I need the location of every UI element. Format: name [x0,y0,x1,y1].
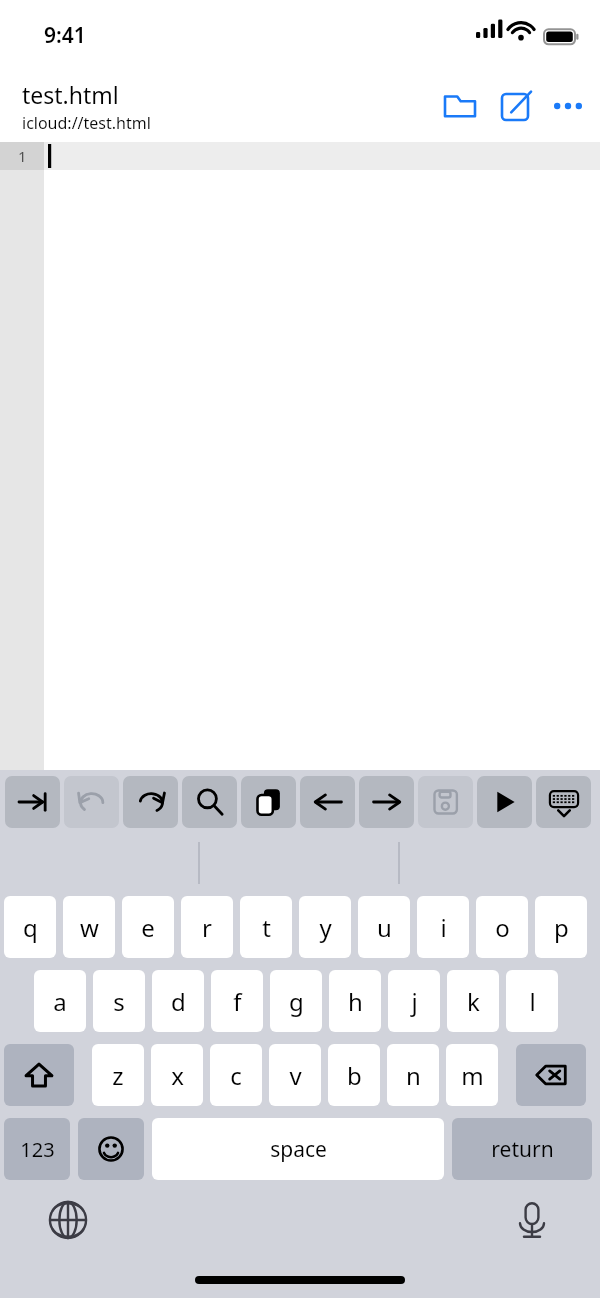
button[interactable]: Dictation [506,1194,558,1246]
button[interactable]: z [92,1044,144,1106]
staticText: f [233,985,242,1018]
staticText: e [141,911,155,944]
button[interactable]: a [34,970,86,1032]
button[interactable]: t [240,896,292,958]
button[interactable]: Emoji [78,1118,144,1180]
button[interactable]: Search [182,776,237,828]
staticText: s [113,985,125,1018]
staticText: z [112,1059,124,1092]
button[interactable]: More options [544,78,592,134]
button[interactable]: w [63,896,115,958]
staticText: h [348,985,363,1018]
staticText: b [347,1059,362,1092]
button[interactable]: space [152,1118,444,1180]
button[interactable]: e [122,896,174,958]
button[interactable]: r [181,896,233,958]
staticText: y [319,911,332,944]
button[interactable]: m [446,1044,498,1106]
button[interactable]: Change keyboard [42,1194,94,1246]
staticText: k [467,985,480,1018]
staticText: j [411,985,418,1018]
button[interactable]: x [151,1044,203,1106]
button[interactable]: k [447,970,499,1032]
staticText: 9:41 [44,21,86,50]
button[interactable]: b [328,1044,380,1106]
staticText: m [461,1059,484,1092]
button[interactable]: Tab [5,776,60,828]
staticText: c [230,1059,242,1092]
staticText: x [171,1059,184,1092]
button[interactable]: v [269,1044,321,1106]
button[interactable]: Run [477,776,532,828]
button[interactable]: Redo [123,776,178,828]
button[interactable]: s [93,970,145,1032]
button[interactable]: Save [418,776,473,828]
staticText: icloud://test.html [22,112,151,134]
button[interactable]: g [270,970,322,1032]
staticText: d [171,985,186,1018]
button[interactable]: j [388,970,440,1032]
button[interactable]: u [358,896,410,958]
button[interactable]: n [387,1044,439,1106]
button[interactable]: Move right [359,776,414,828]
staticText: l [529,985,536,1018]
staticText: space [270,1135,327,1164]
button[interactable]: Move left [300,776,355,828]
staticText: w [80,911,99,944]
staticText: 1 [18,146,27,166]
staticText: 123 [20,1136,55,1163]
staticText: g [289,985,304,1018]
button[interactable]: q [4,896,56,958]
staticText: n [406,1059,421,1092]
button[interactable]: Undo [64,776,119,828]
button[interactable]: p [535,896,587,958]
button[interactable]: o [476,896,528,958]
staticText: p [554,911,569,944]
button[interactable]: h [329,970,381,1032]
staticText: i [440,911,447,944]
button[interactable]: Copy paste [241,776,296,828]
staticText: o [495,911,510,944]
button[interactable]: l [506,970,558,1032]
button[interactable]: y [299,896,351,958]
staticText: t [262,911,271,944]
button[interactable]: Open folder [432,78,488,134]
button[interactable]: 123 [4,1118,70,1180]
button[interactable]: c [210,1044,262,1106]
staticText: test.html [22,79,119,110]
button[interactable]: New file [488,78,544,134]
button[interactable]: f [211,970,263,1032]
staticText: v [289,1059,302,1092]
button[interactable]: Hide keyboard [536,776,591,828]
button[interactable]: Backspace [516,1044,586,1106]
staticText: r [202,911,212,944]
button[interactable]: i [417,896,469,958]
staticText: u [377,911,392,944]
staticText: q [23,911,38,944]
button[interactable]: d [152,970,204,1032]
staticText: return [491,1135,554,1164]
button[interactable]: return [452,1118,592,1180]
button[interactable]: Shift [4,1044,74,1106]
staticText: a [53,985,67,1018]
